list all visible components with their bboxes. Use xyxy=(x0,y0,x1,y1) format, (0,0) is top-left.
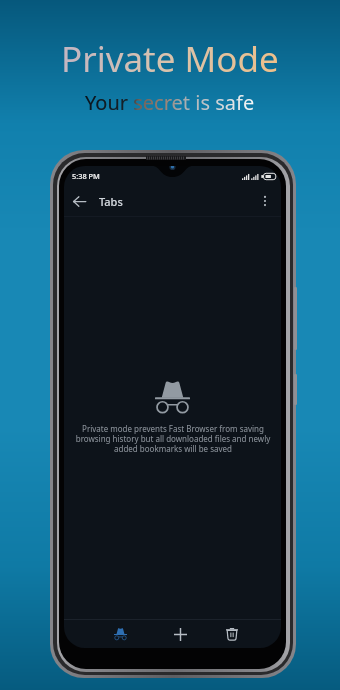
button[interactable]: More options xyxy=(254,190,276,212)
button[interactable]: Private tabs xyxy=(110,624,130,644)
staticText: Private mode prevents Fast Browser from … xyxy=(73,423,273,454)
staticText: Private Mode xyxy=(61,35,279,83)
button[interactable]: Close all tabs xyxy=(222,624,242,644)
button[interactable]: Back xyxy=(68,190,91,213)
staticText: Tabs xyxy=(99,194,123,209)
button[interactable]: New tab xyxy=(170,624,190,644)
staticText: Your secret is safe xyxy=(85,89,255,116)
staticText: 5:38 PM xyxy=(72,171,100,181)
